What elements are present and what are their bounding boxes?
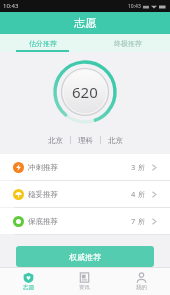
button[interactable]: 我的: [113, 268, 170, 295]
button[interactable]: 权威推荐: [16, 246, 154, 267]
staticText: 保底推荐: [28, 217, 58, 226]
button[interactable]: 志愿: [0, 268, 56, 295]
staticText: 北京: [48, 136, 63, 145]
staticText: 权威推荐: [69, 252, 101, 262]
button[interactable]: 北京: [41, 134, 70, 147]
staticText: 资讯: [79, 284, 90, 291]
staticText: 估分推荐: [29, 39, 57, 48]
button[interactable]: 终极推荐: [85, 34, 170, 52]
button[interactable]: 北京: [101, 134, 130, 147]
staticText: 620: [72, 82, 98, 102]
staticText: 稳妥推荐: [28, 190, 58, 199]
button[interactable]: 资讯: [56, 268, 113, 295]
staticText: 所: [138, 217, 145, 226]
button[interactable]: 估分推荐: [0, 34, 85, 52]
staticText: 理科: [78, 136, 93, 145]
button[interactable]: 冲刺推荐: [0, 154, 170, 180]
staticText: 10:43: [128, 3, 141, 10]
staticText: 我的: [136, 284, 147, 291]
staticText: 所: [138, 190, 145, 199]
staticText: 7: [131, 216, 136, 226]
staticText: 10:43: [3, 2, 19, 10]
staticText: 冲刺推荐: [28, 163, 58, 172]
staticText: 所: [138, 163, 145, 172]
staticText: 志愿: [74, 16, 96, 30]
staticText: 北京: [108, 136, 123, 145]
staticText: 终极推荐: [114, 39, 142, 48]
button[interactable]: 理科: [71, 134, 100, 147]
button[interactable]: 保底推荐: [0, 208, 170, 234]
button[interactable]: 稳妥推荐: [0, 181, 170, 207]
staticText: 志愿: [23, 284, 34, 291]
staticText: 3: [131, 162, 136, 172]
staticText: 4: [131, 189, 136, 199]
